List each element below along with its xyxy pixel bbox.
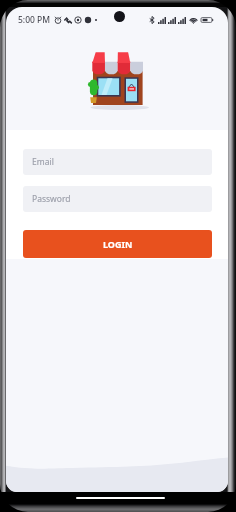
staticText: Password: [32, 193, 71, 205]
staticText: LOGIN: [103, 238, 133, 250]
button[interactable]: LOGIN: [23, 230, 212, 258]
staticText: 5:00 PM: [18, 14, 51, 26]
button[interactable]: Password: [23, 186, 212, 212]
staticText: Email: [32, 156, 54, 168]
other: Home gesture bar: [76, 497, 165, 499]
button[interactable]: Email: [23, 149, 212, 175]
